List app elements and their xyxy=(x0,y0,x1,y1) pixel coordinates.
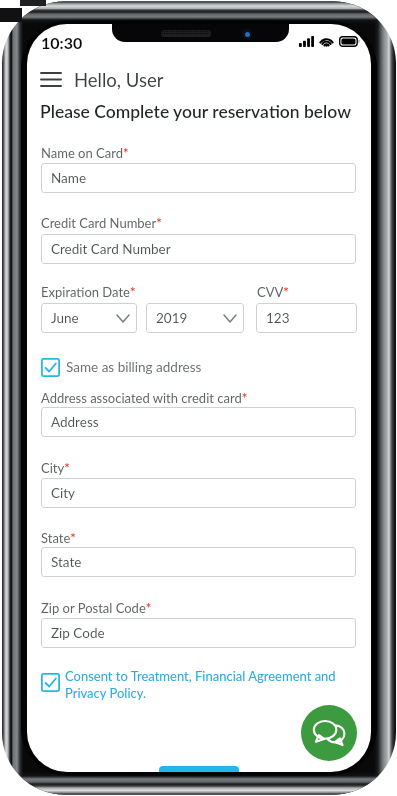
staticText: City* xyxy=(41,460,70,476)
button[interactable]: Zip Code xyxy=(41,618,356,648)
staticText: 2019 xyxy=(156,310,188,326)
staticText: Credit Card Number xyxy=(51,241,171,257)
staticText: CVV* xyxy=(257,284,289,300)
staticText: City xyxy=(51,485,76,501)
button[interactable]: State xyxy=(41,547,356,577)
button[interactable]: Menu xyxy=(34,65,68,93)
staticText: Name on Card* xyxy=(41,145,129,161)
button[interactable]: City xyxy=(41,478,356,508)
staticText: 10:30 xyxy=(41,33,83,52)
button[interactable]: June xyxy=(41,303,137,333)
button[interactable]: 123 xyxy=(256,303,357,333)
staticText: Credit Card Number* xyxy=(41,215,162,231)
staticText: Address xyxy=(51,414,99,430)
staticText: Same as billing address xyxy=(66,359,202,375)
button[interactable]: Credit Card Number xyxy=(41,234,356,264)
staticText: June xyxy=(51,310,79,326)
staticText: Hello, User xyxy=(74,69,164,91)
button[interactable]: Name xyxy=(41,163,356,193)
button[interactable]: Chat xyxy=(301,705,357,761)
staticText: Address associated with credit card* xyxy=(41,390,248,406)
button[interactable]: Consent checkbox xyxy=(41,673,60,692)
staticText: Consent to Treatment, Financial Agreemen… xyxy=(65,668,350,701)
button[interactable]: Same as billing address xyxy=(41,358,60,377)
staticText: State* xyxy=(41,530,76,546)
button[interactable]: 2019 xyxy=(146,303,244,333)
staticText: 123 xyxy=(266,310,290,326)
staticText: Name xyxy=(51,170,87,186)
staticText: Zip or Postal Code* xyxy=(41,600,152,616)
staticText: State xyxy=(51,554,82,570)
staticText: Expiration Date* xyxy=(41,284,136,300)
button[interactable]: Address xyxy=(41,407,356,437)
staticText: Zip Code xyxy=(51,625,105,641)
staticText: Please Complete your reservation below xyxy=(40,101,352,122)
